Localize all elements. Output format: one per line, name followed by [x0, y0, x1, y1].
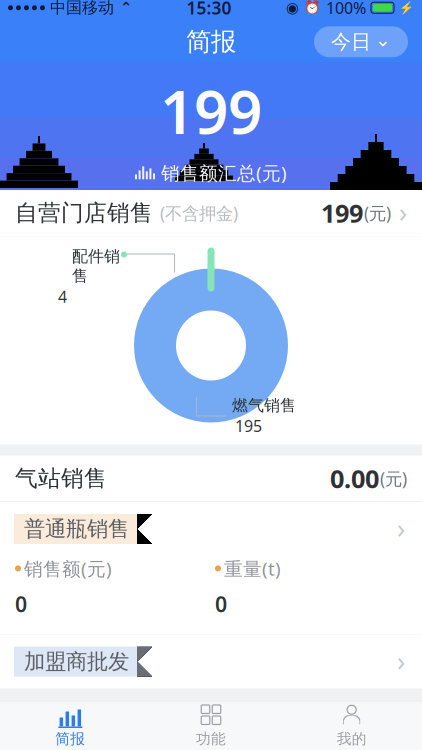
- staticText: 今日: [331, 29, 371, 54]
- staticText: 0: [15, 590, 27, 618]
- staticText: 气站销售: [15, 465, 107, 492]
- staticText: ⚡: [399, 1, 414, 15]
- button[interactable]: 简报: [0, 702, 141, 750]
- staticText: ◉: [286, 0, 299, 16]
- staticText: 配件销售: [72, 246, 120, 286]
- button[interactable]: 加盟商批发: [0, 635, 422, 689]
- staticText: 195: [235, 415, 262, 436]
- staticText: 简报: [186, 26, 236, 57]
- staticText: ⌃: [120, 0, 132, 16]
- staticText: 4: [58, 286, 67, 307]
- staticText: ›: [397, 510, 405, 546]
- staticText: 100%: [326, 0, 366, 18]
- staticText: ⏰: [304, 0, 321, 15]
- staticText: 燃气销售: [232, 396, 296, 415]
- staticText: (元): [380, 467, 407, 490]
- staticText: 199: [160, 71, 262, 150]
- button[interactable]: 气站销售: [0, 455, 422, 501]
- staticText: 普通瓶销售: [24, 516, 129, 542]
- staticText: 加盟商批发: [24, 648, 129, 675]
- staticText: 0.00: [330, 462, 379, 495]
- staticText: ›: [399, 194, 407, 230]
- staticText: ›: [397, 643, 405, 678]
- button[interactable]: 今日: [314, 26, 408, 57]
- staticText: 15:30: [186, 0, 231, 19]
- button[interactable]: 普通瓶销售: [0, 502, 422, 556]
- staticText: 0: [215, 590, 227, 618]
- staticText: (元): [364, 201, 391, 224]
- staticText: ⌄: [375, 29, 391, 50]
- staticText: 销售额(元): [24, 556, 112, 581]
- staticText: 简报: [55, 730, 85, 748]
- staticText: 199: [321, 196, 363, 230]
- staticText: (不含押金): [155, 201, 238, 224]
- staticText: 销售额汇总(元): [161, 160, 287, 185]
- staticText: 功能: [196, 730, 226, 748]
- button[interactable]: 自营门店销售: [0, 190, 422, 236]
- staticText: 自营门店销售: [15, 199, 153, 227]
- staticText: 中国移动: [50, 0, 114, 18]
- staticText: 我的: [337, 730, 367, 748]
- button[interactable]: 功能: [141, 702, 281, 750]
- button[interactable]: 我的: [281, 702, 422, 750]
- staticText: 重量(t): [224, 556, 281, 581]
